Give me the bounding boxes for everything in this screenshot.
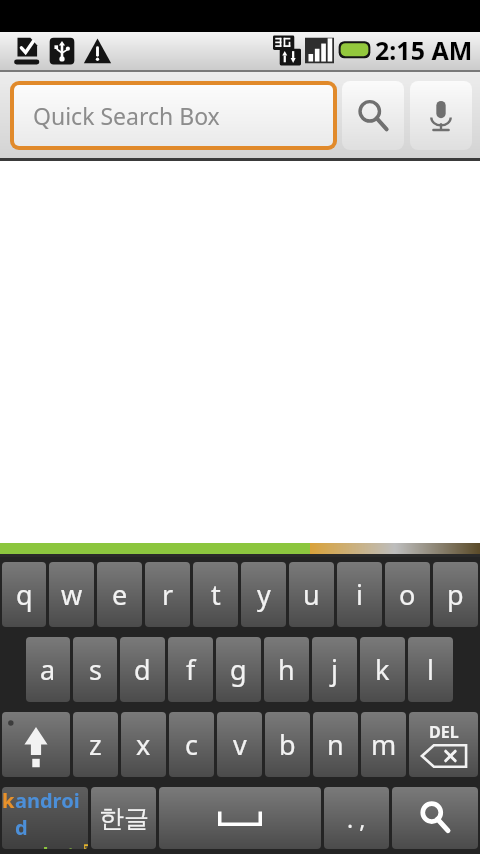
staticText: q bbox=[16, 576, 33, 613]
button[interactable]: m bbox=[361, 712, 406, 777]
button[interactable]: w bbox=[49, 562, 94, 627]
button[interactable]: e bbox=[97, 562, 142, 627]
button[interactable]: Shift bbox=[2, 712, 70, 777]
staticText: m bbox=[371, 726, 397, 763]
staticText: Quick Search Box bbox=[33, 100, 220, 131]
button[interactable]: i bbox=[337, 562, 382, 627]
staticText: t bbox=[211, 576, 221, 613]
staticText: u bbox=[303, 576, 320, 613]
staticText: v bbox=[233, 726, 247, 763]
staticText: x bbox=[136, 726, 151, 763]
staticText: . , bbox=[347, 803, 366, 834]
button[interactable]: k bbox=[360, 637, 405, 702]
button[interactable]: y bbox=[241, 562, 286, 627]
button[interactable]: t bbox=[193, 562, 238, 627]
staticText: e bbox=[112, 576, 128, 613]
button[interactable]: d bbox=[120, 637, 165, 702]
button[interactable]: . , bbox=[324, 787, 389, 849]
button[interactable]: q bbox=[2, 562, 46, 627]
button[interactable]: Voice search bbox=[410, 81, 472, 150]
button[interactable]: 한글 bbox=[91, 787, 156, 849]
staticText: a bbox=[40, 651, 56, 688]
button[interactable]: a bbox=[26, 637, 70, 702]
button[interactable]: Delete bbox=[409, 712, 478, 777]
button[interactable]: o bbox=[385, 562, 430, 627]
staticText: 한글 bbox=[99, 803, 149, 834]
button[interactable]: g bbox=[216, 637, 261, 702]
button[interactable]: h bbox=[264, 637, 309, 702]
staticText: n bbox=[327, 726, 344, 763]
staticText: h bbox=[278, 651, 295, 688]
staticText: l bbox=[427, 651, 434, 688]
staticText: c bbox=[185, 726, 198, 763]
button[interactable]: Space bbox=[159, 787, 321, 849]
staticText: r bbox=[162, 576, 174, 613]
staticText: f bbox=[186, 651, 196, 688]
staticText: o bbox=[399, 576, 416, 613]
staticText: s bbox=[89, 651, 102, 688]
button[interactable]: r bbox=[145, 562, 190, 627]
staticText: y bbox=[257, 576, 271, 613]
staticText: k bbox=[375, 651, 390, 688]
staticText: DEL bbox=[429, 721, 459, 743]
button[interactable]: Android Market bbox=[2, 787, 88, 849]
staticText: g bbox=[230, 651, 247, 688]
staticText: b bbox=[279, 726, 296, 763]
button[interactable]: s bbox=[73, 637, 117, 702]
staticText: k bbox=[2, 787, 15, 814]
button[interactable]: Quick Search Box bbox=[14, 85, 333, 146]
button[interactable]: x bbox=[121, 712, 166, 777]
button[interactable]: Search bbox=[392, 787, 478, 849]
staticText: 2:15 AM bbox=[375, 33, 473, 67]
button[interactable]: f bbox=[168, 637, 213, 702]
staticText: android bbox=[15, 787, 88, 841]
button[interactable]: l bbox=[408, 637, 453, 702]
button[interactable]: Search bbox=[342, 81, 404, 150]
button[interactable]: p bbox=[433, 562, 478, 627]
staticText: ♬ bbox=[79, 841, 88, 849]
button[interactable]: n bbox=[313, 712, 358, 777]
staticText: j bbox=[331, 651, 338, 688]
button[interactable]: v bbox=[217, 712, 262, 777]
staticText: p bbox=[447, 576, 464, 613]
button[interactable]: j bbox=[312, 637, 357, 702]
staticText: w bbox=[61, 576, 83, 613]
staticText: d bbox=[134, 651, 151, 688]
staticText: z bbox=[89, 726, 102, 763]
staticText: market bbox=[2, 841, 76, 849]
staticText: i bbox=[356, 576, 363, 613]
button[interactable]: b bbox=[265, 712, 310, 777]
button[interactable]: u bbox=[289, 562, 334, 627]
button[interactable]: c bbox=[169, 712, 214, 777]
button[interactable]: z bbox=[73, 712, 118, 777]
